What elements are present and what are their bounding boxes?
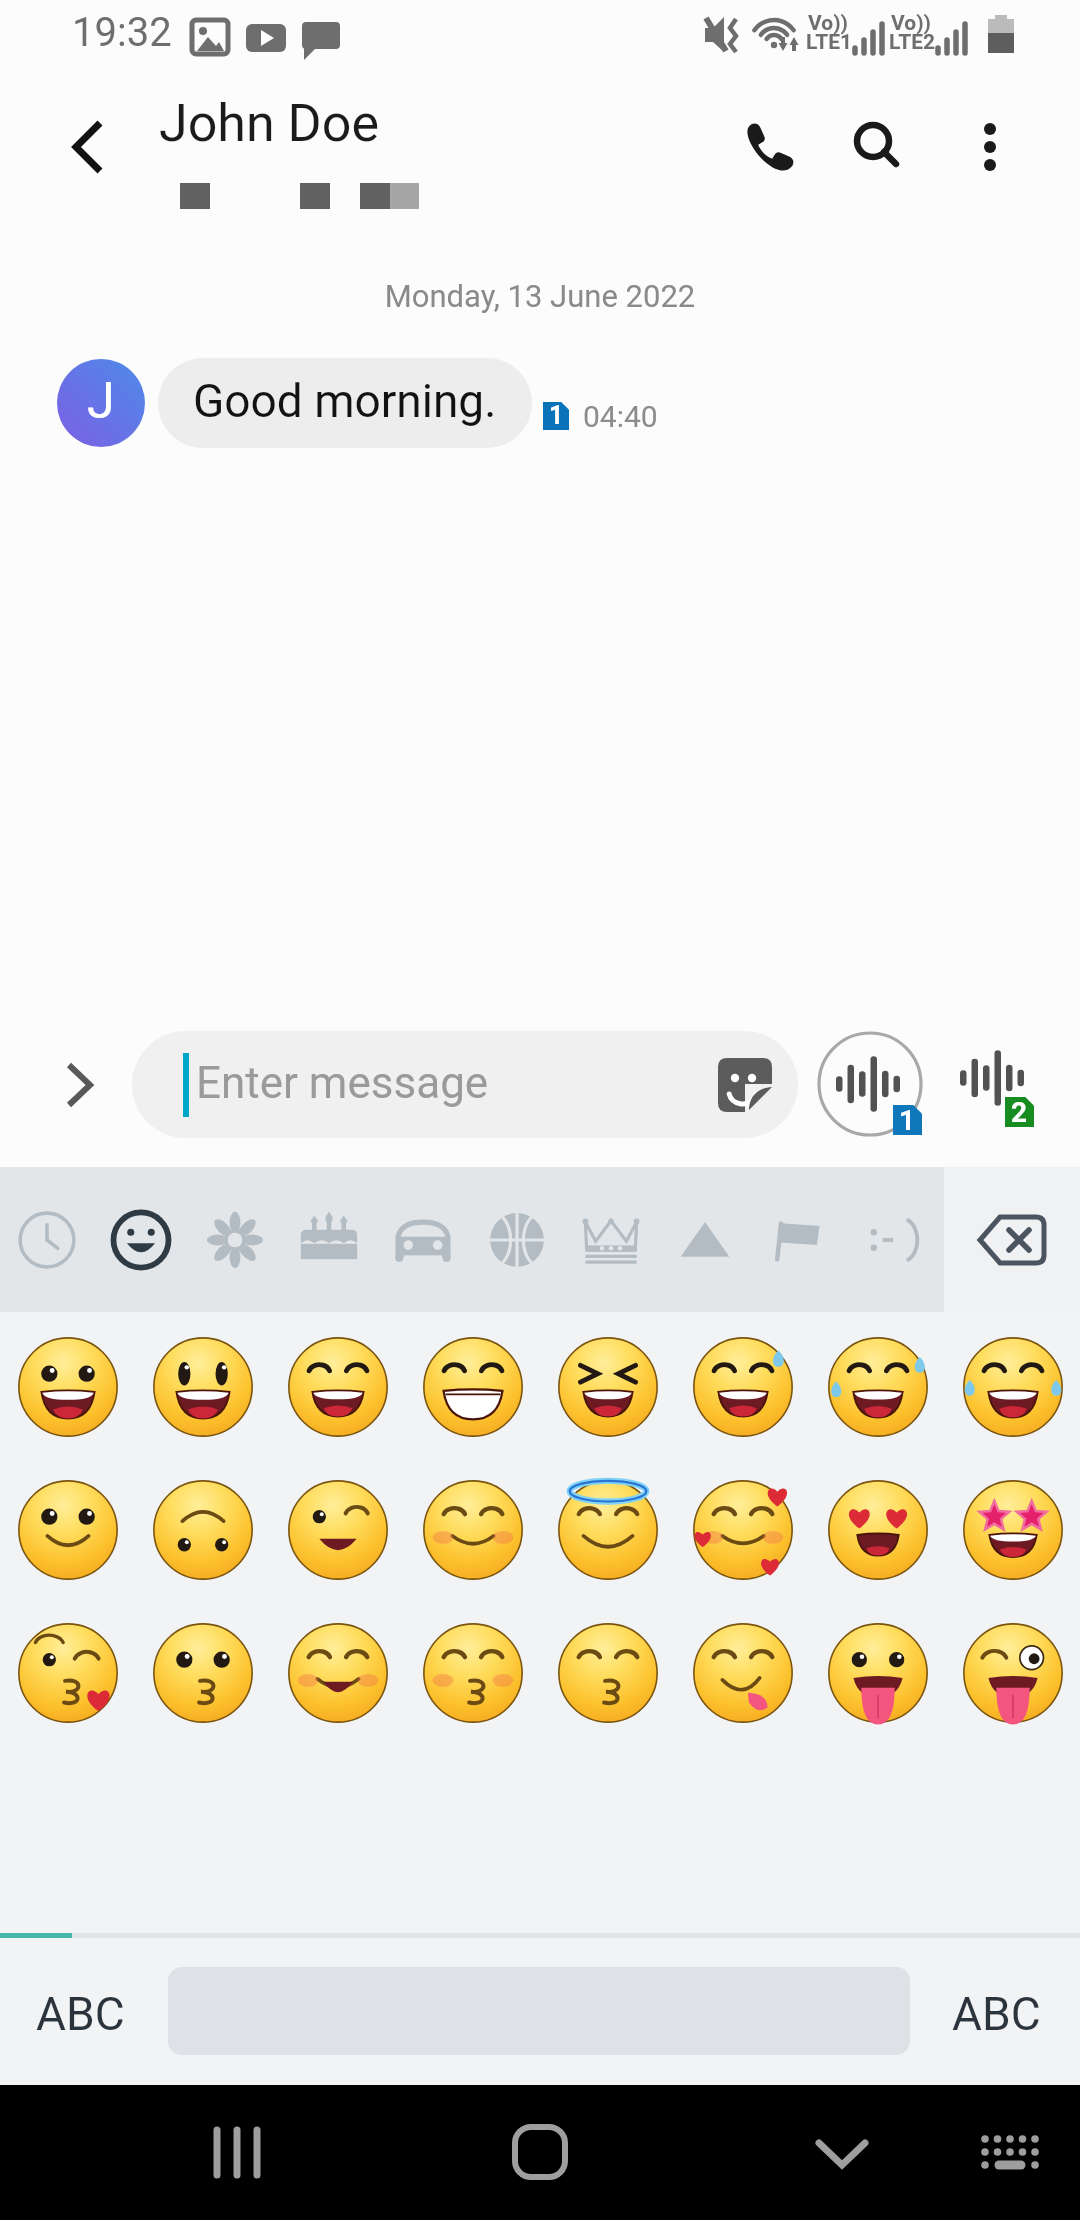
button[interactable]: Emoji 18 <box>136 1602 270 1744</box>
staticText: 1 <box>899 1104 916 1134</box>
button[interactable]: Emoji 17 <box>1 1602 135 1744</box>
staticText: Enter message <box>196 1057 489 1109</box>
button[interactable]: Objects <box>564 1167 658 1312</box>
button[interactable]: Emoji 21 <box>541 1602 675 1744</box>
button[interactable]: Emoji 3 <box>271 1316 405 1458</box>
staticText: LTE1 <box>806 30 853 55</box>
button[interactable]: Emoji 20 <box>406 1602 540 1744</box>
button[interactable]: Stickers <box>706 1046 784 1124</box>
button[interactable]: Emoji 24 <box>946 1602 1080 1744</box>
button[interactable]: Emoji 13 <box>541 1459 675 1601</box>
button[interactable]: Flags <box>752 1167 846 1312</box>
button[interactable]: Emoji 11 <box>271 1459 405 1601</box>
button[interactable]: Voice message SIM 2 <box>945 1031 1051 1137</box>
button[interactable]: Emoji 10 <box>136 1459 270 1601</box>
button[interactable]: ABC <box>0 1938 160 2085</box>
button[interactable]: Food <box>282 1167 376 1312</box>
staticText: John Doe <box>159 93 379 154</box>
button[interactable]: Search <box>832 101 924 193</box>
button[interactable]: Nature <box>188 1167 282 1312</box>
button[interactable]: ABC <box>912 1938 1080 2085</box>
button[interactable]: Call <box>724 101 816 193</box>
button[interactable]: Emoji 2 <box>136 1316 270 1458</box>
staticText: 04:40 <box>583 399 658 434</box>
button[interactable]: Emoji 22 <box>676 1602 810 1744</box>
button[interactable]: Emoji 14 <box>676 1459 810 1601</box>
button[interactable]: Emoji 16 <box>946 1459 1080 1601</box>
button[interactable]: Emoticons <box>846 1167 940 1312</box>
staticText: Vo)) <box>808 11 848 36</box>
button[interactable]: Activities <box>470 1167 564 1312</box>
button[interactable]: Emoji 4 <box>406 1316 540 1458</box>
button[interactable]: Change keyboard <box>950 2092 1070 2212</box>
button[interactable]: Good morning. <box>158 358 532 448</box>
button[interactable]: Hide keyboard <box>782 2092 902 2212</box>
button[interactable]: Enter message <box>132 1031 798 1138</box>
staticText: Vo)) <box>891 11 931 36</box>
button[interactable]: Emoji 1 <box>1 1316 135 1458</box>
staticText: ABC <box>36 1987 125 2041</box>
staticText: 19:32 <box>72 9 172 56</box>
button[interactable]: Backspace <box>944 1167 1080 1312</box>
button[interactable]: Home <box>480 2092 600 2212</box>
button[interactable]: Recent apps <box>177 2092 297 2212</box>
button[interactable]: Symbols <box>658 1167 752 1312</box>
button[interactable]: Emoji 7 <box>811 1316 945 1458</box>
button[interactable]: More options <box>944 101 1036 193</box>
staticText: J <box>87 372 115 431</box>
button[interactable]: Emoji 9 <box>1 1459 135 1601</box>
button[interactable]: Recent <box>0 1167 94 1312</box>
staticText: ABC <box>952 1987 1041 2041</box>
button[interactable]: Emoji 6 <box>676 1316 810 1458</box>
button[interactable]: Emoji 19 <box>271 1602 405 1744</box>
staticText: 2 <box>1011 1096 1028 1126</box>
button[interactable]: Emoji 8 <box>946 1316 1080 1458</box>
button[interactable]: Show more options <box>37 1043 121 1127</box>
staticText: Monday, 13 June 2022 <box>0 278 1080 314</box>
button[interactable]: Back <box>46 101 138 193</box>
button[interactable]: Smileys <box>94 1167 188 1312</box>
staticText: LTE2 <box>889 30 936 55</box>
button[interactable]: Emoji 5 <box>541 1316 675 1458</box>
button[interactable]: Emoji 23 <box>811 1602 945 1744</box>
button[interactable]: Emoji 12 <box>406 1459 540 1601</box>
button[interactable]: Voice message SIM 1 <box>817 1031 923 1137</box>
button[interactable]: Travel <box>376 1167 470 1312</box>
button[interactable]: Emoji 15 <box>811 1459 945 1601</box>
staticText: Good morning. <box>193 374 497 428</box>
staticText: 1 <box>549 401 564 429</box>
